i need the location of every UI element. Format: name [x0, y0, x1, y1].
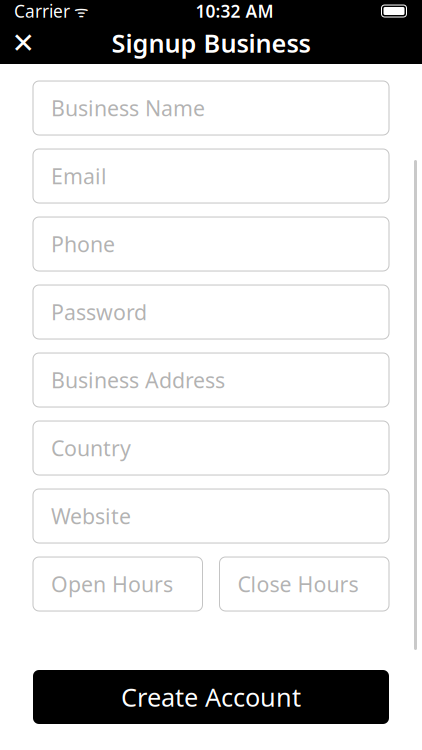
- staticText: Email: [51, 162, 107, 190]
- staticText: Business Name: [51, 94, 205, 122]
- button[interactable]: Close: [0, 22, 46, 64]
- staticText: 10:32 AM: [195, 0, 273, 22]
- staticText: Carrier: [14, 0, 70, 22]
- staticText: Business Address: [51, 366, 225, 394]
- staticText: Password: [51, 298, 147, 326]
- staticText: Close Hours: [237, 570, 358, 598]
- staticText: ᯤ: [70, 0, 89, 22]
- staticText: Open Hours: [51, 570, 173, 598]
- staticText: Country: [51, 434, 131, 462]
- staticText: Phone: [51, 230, 115, 258]
- button[interactable]: Create Account: [33, 670, 389, 724]
- staticText: Website: [51, 502, 131, 530]
- staticText: Signup Business: [111, 26, 310, 60]
- staticText: Create Account: [121, 680, 301, 714]
- staticText: ✕: [11, 27, 34, 59]
